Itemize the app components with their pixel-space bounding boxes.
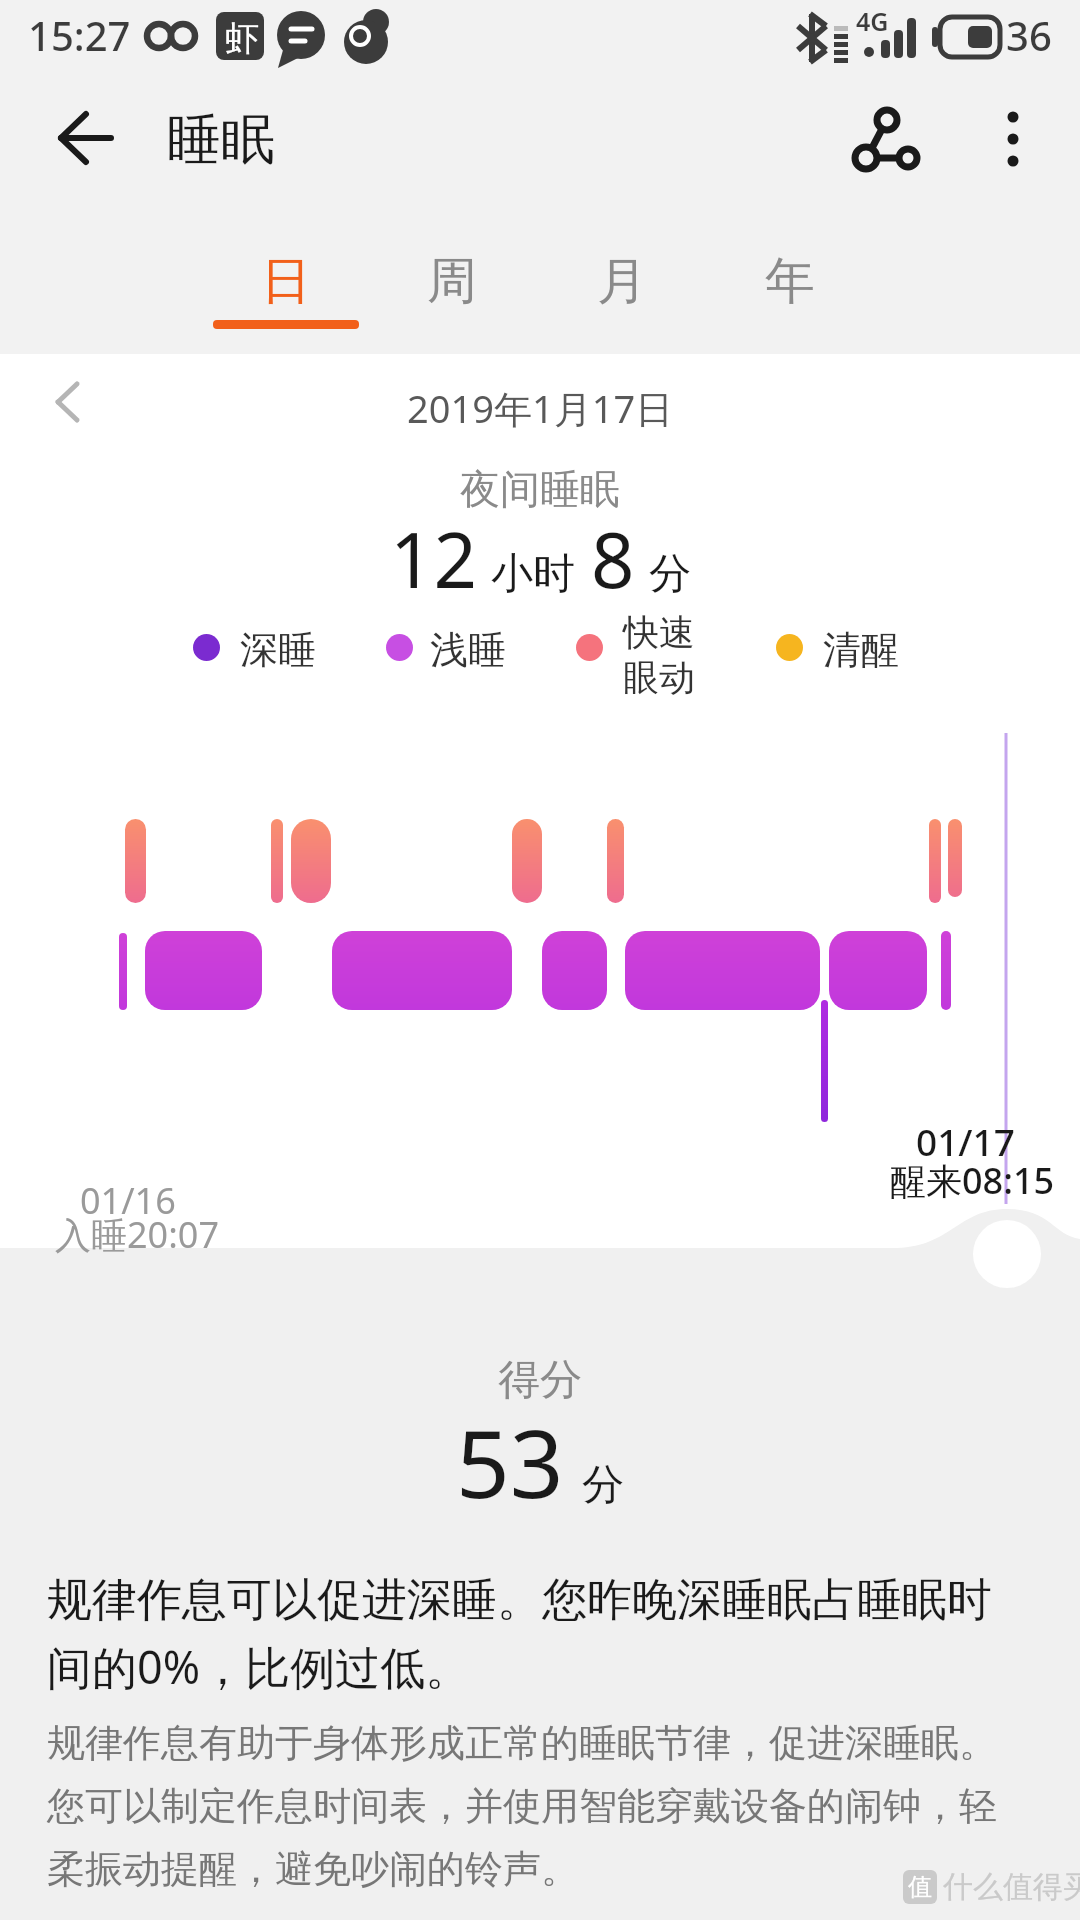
staticText: 值 — [908, 1872, 932, 1902]
staticText: 入睡20:07 — [55, 1210, 220, 1259]
staticText: 4G — [856, 4, 889, 38]
staticText: 深睡 — [240, 626, 316, 674]
staticText: 浅睡 — [430, 626, 506, 674]
staticText: 醒来08:15 — [890, 1156, 1055, 1205]
staticText: 虾 — [225, 17, 259, 60]
staticText: 什么值得买 — [943, 1868, 1080, 1906]
staticText: 小时 — [491, 548, 575, 601]
button[interactable] — [30, 372, 90, 432]
staticText: 01/17 — [916, 1116, 1015, 1166]
staticText: 分 — [649, 548, 691, 601]
staticText: 月 — [597, 250, 647, 313]
staticText: 得分 — [498, 1354, 582, 1407]
staticText: 日 — [261, 250, 311, 313]
button[interactable]: 年 — [716, 240, 864, 340]
staticText: 53 — [456, 1398, 564, 1526]
staticText: 36 — [1006, 8, 1052, 62]
staticText: 01/16 — [80, 1176, 176, 1225]
staticText: 8 — [591, 507, 635, 611]
button[interactable]: 月 — [548, 240, 696, 340]
staticText: 年 — [765, 250, 815, 313]
button[interactable] — [845, 100, 925, 180]
staticText: 规律作息有助于身体形成正常的睡眠节律，促进深睡眠。您可以制定作息时间表，并使用智… — [47, 1719, 1005, 1893]
button[interactable] — [40, 100, 120, 180]
staticText: 夜间睡眠 — [460, 464, 620, 514]
staticText: 15:27 — [28, 8, 131, 62]
button[interactable]: 日 — [212, 240, 360, 340]
staticText: 周 — [427, 250, 477, 313]
staticText: 分 — [582, 1459, 624, 1512]
button[interactable] — [975, 100, 1051, 176]
button[interactable]: 周 — [378, 240, 526, 340]
staticText: 规律作息可以促进深睡。您昨晚深睡眠占睡眠时间的0%，比例过低。 — [47, 1572, 1009, 1697]
staticText: 睡眠 — [167, 106, 275, 174]
staticText: 快速 — [623, 610, 695, 655]
staticText: 12 — [390, 507, 477, 611]
staticText: 眼动 — [623, 655, 695, 700]
staticText: 2019年1月17日 — [407, 382, 674, 434]
staticText: 清醒 — [823, 626, 899, 674]
button[interactable] — [973, 1220, 1041, 1288]
